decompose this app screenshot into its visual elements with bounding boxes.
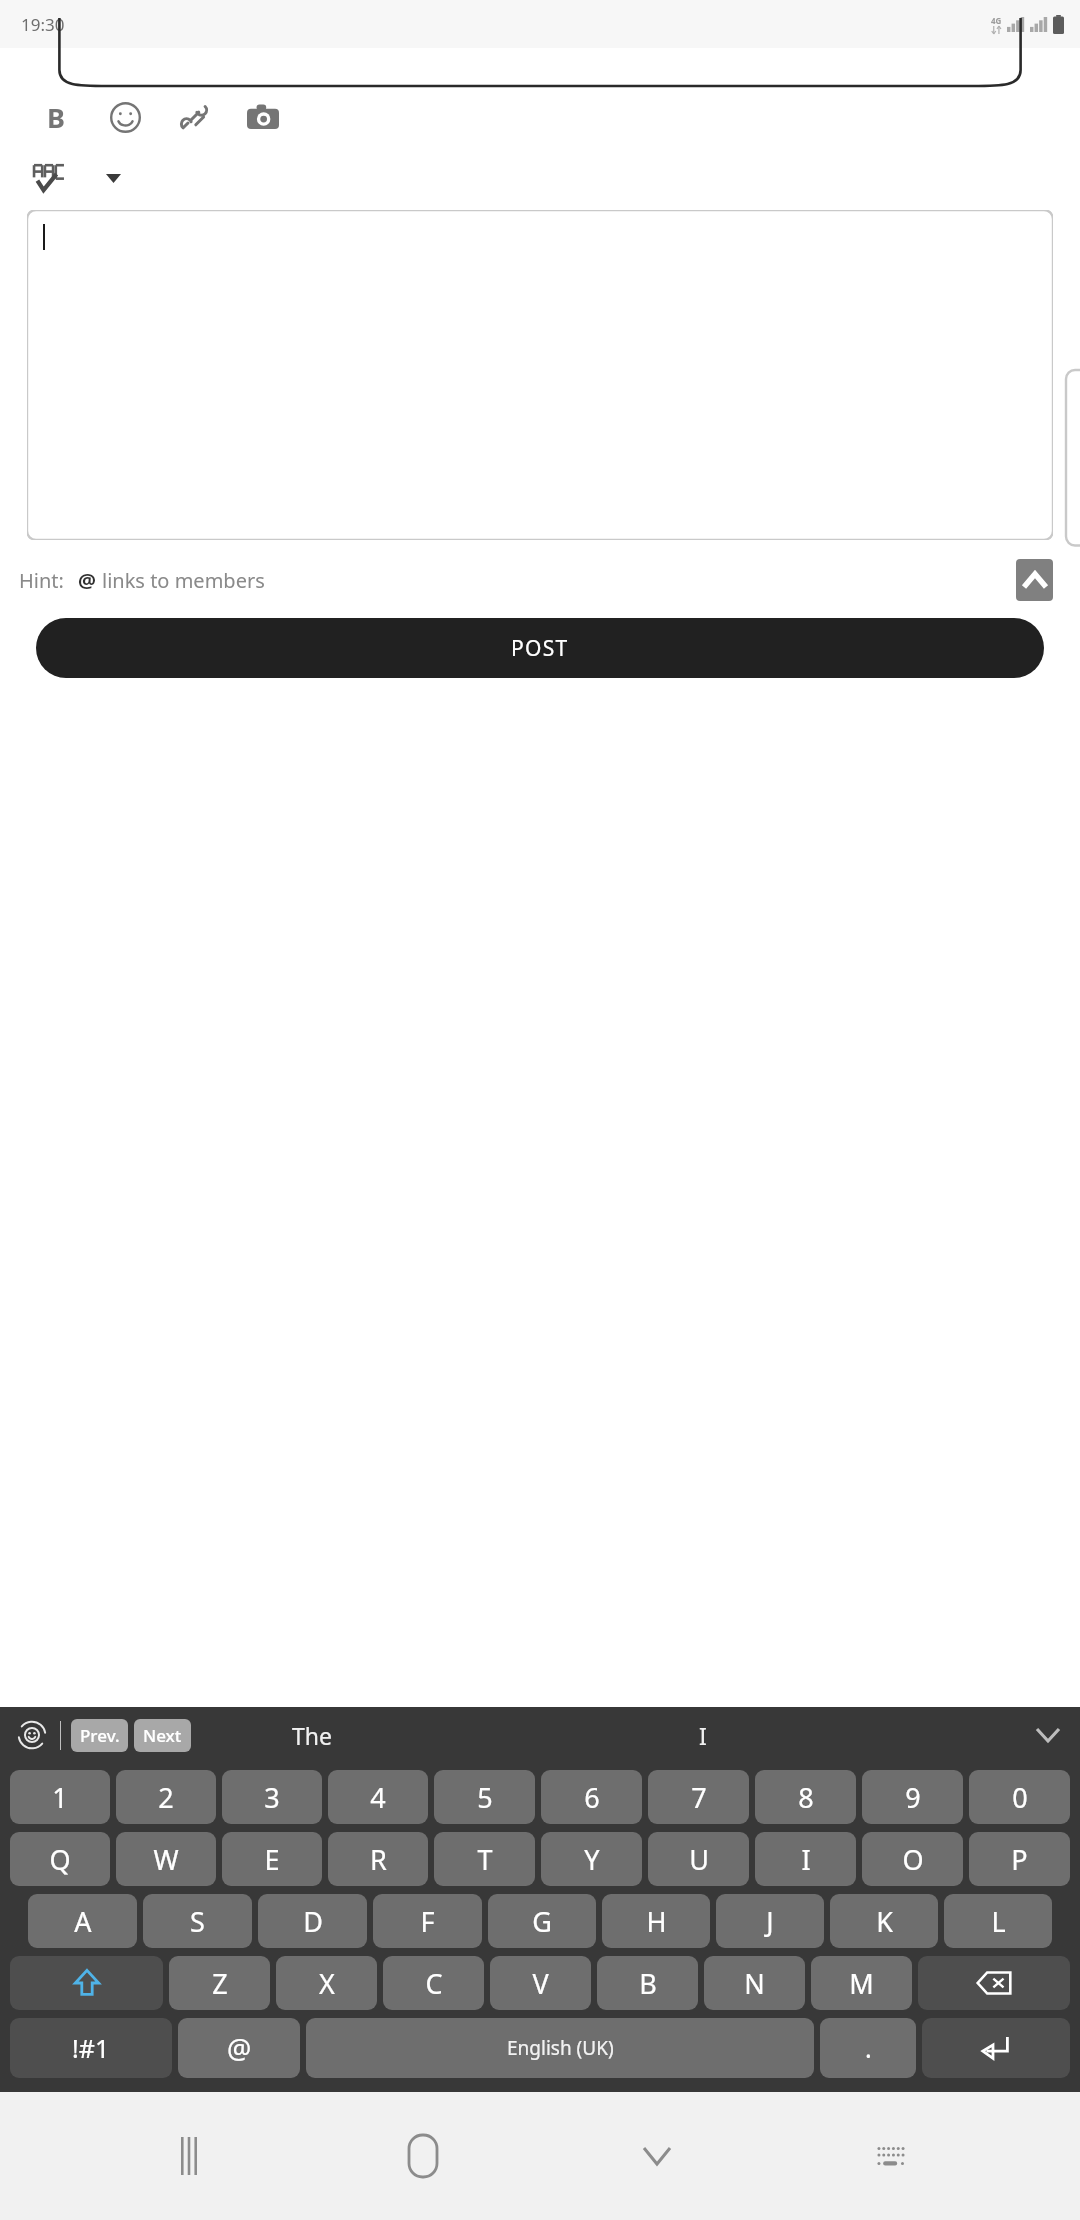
button[interactable]: Hide suggestions (1020, 1707, 1076, 1763)
staticText: 4 (370, 1779, 386, 1816)
button[interactable]: Back (612, 2111, 702, 2201)
button[interactable]: K (830, 1894, 938, 1948)
button[interactable]: Keyboard (846, 2111, 936, 2201)
staticText: U (689, 1841, 709, 1878)
button[interactable]: W (116, 1832, 216, 1886)
staticText: F (420, 1903, 435, 1940)
button[interactable]: N (704, 1956, 805, 2010)
button[interactable]: Next (134, 1719, 191, 1752)
staticText: 8 (798, 1779, 814, 1816)
staticText: R (370, 1841, 387, 1878)
button[interactable]: 0 (969, 1770, 1070, 1824)
button[interactable]: Backspace (918, 1956, 1070, 2010)
staticText: L (991, 1903, 1006, 1940)
button[interactable]: Scroll up (1016, 559, 1053, 601)
button[interactable]: B (597, 1956, 698, 2010)
button[interactable]: J (716, 1894, 824, 1948)
staticText: B (47, 99, 65, 136)
button[interactable]: Z (169, 1956, 270, 2010)
staticText: W (153, 1841, 179, 1878)
staticText: @ (227, 2030, 252, 2067)
button[interactable]: 6 (541, 1770, 642, 1824)
staticText: A (74, 1903, 92, 1940)
staticText: E (264, 1841, 280, 1878)
staticText: 6 (584, 1779, 600, 1816)
button[interactable]: 9 (862, 1770, 963, 1824)
button[interactable]: Insert emoji (99, 91, 151, 143)
button[interactable]: Home (378, 2111, 468, 2201)
button[interactable]: C (383, 1956, 484, 2010)
button[interactable]: 2 (116, 1770, 216, 1824)
button[interactable]: Y (541, 1832, 642, 1886)
staticText: O (902, 1841, 924, 1878)
button[interactable]: Spell check (30, 159, 68, 197)
staticText: I (801, 1841, 811, 1878)
staticText: @ (78, 567, 96, 594)
button[interactable]: Enter (922, 2018, 1070, 2078)
staticText: X (319, 1965, 335, 2002)
button[interactable]: Period (820, 2018, 916, 2078)
staticText: Z (212, 1965, 228, 2002)
staticText: 0 (1012, 1779, 1028, 1816)
staticText: 4G (991, 15, 1002, 26)
button[interactable]: V (490, 1956, 591, 2010)
button[interactable]: G (488, 1894, 596, 1948)
staticText: 9 (905, 1779, 921, 1816)
button[interactable]: D (258, 1894, 367, 1948)
button[interactable]: E (222, 1832, 322, 1886)
staticText: H (646, 1903, 667, 1940)
button[interactable]: 1 (10, 1770, 110, 1824)
staticText: S (190, 1903, 205, 1940)
staticText: G (532, 1903, 552, 1940)
staticText: 1 (52, 1779, 68, 1816)
staticText: links to members (102, 567, 265, 594)
button[interactable]: The (237, 1707, 387, 1763)
button[interactable]: Bold (30, 91, 82, 143)
button[interactable]: X (276, 1956, 377, 2010)
button[interactable]: T (434, 1832, 535, 1886)
button[interactable]: I (658, 1707, 748, 1763)
button[interactable]: Insert link (168, 91, 220, 143)
button[interactable]: Q (10, 1832, 110, 1886)
button[interactable] (27, 210, 1053, 540)
button[interactable]: 5 (434, 1770, 535, 1824)
staticText: P (1011, 1841, 1028, 1878)
button[interactable]: Prev. (71, 1719, 128, 1752)
staticText: English (UK) (507, 2035, 614, 2061)
button[interactable]: POST (36, 618, 1044, 678)
button[interactable]: R (328, 1832, 428, 1886)
button[interactable]: Attach photo (237, 91, 289, 143)
button[interactable]: Space (306, 2018, 814, 2078)
button[interactable]: U (648, 1832, 749, 1886)
button[interactable]: O (862, 1832, 963, 1886)
button[interactable]: I (755, 1832, 856, 1886)
button[interactable]: Emoji (10, 1713, 54, 1757)
staticText: I (699, 1720, 707, 1751)
button[interactable]: P (969, 1832, 1070, 1886)
staticText: POST (511, 634, 569, 663)
staticText: 2 (158, 1779, 174, 1816)
button[interactable]: At sign (178, 2018, 300, 2078)
staticText: Prev. (80, 1724, 120, 1747)
button[interactable]: 4 (328, 1770, 428, 1824)
button[interactable]: F (373, 1894, 482, 1948)
staticText: The (292, 1720, 332, 1751)
staticText: 7 (691, 1779, 707, 1816)
button[interactable]: H (602, 1894, 710, 1948)
staticText: 3 (264, 1779, 280, 1816)
staticText: Q (49, 1841, 71, 1878)
button[interactable]: 3 (222, 1770, 322, 1824)
button[interactable]: A (28, 1894, 137, 1948)
button[interactable]: Recents (144, 2111, 234, 2201)
staticText: Next (143, 1724, 182, 1747)
button[interactable]: M (811, 1956, 912, 2010)
staticText: D (303, 1903, 323, 1940)
button[interactable]: L (944, 1894, 1052, 1948)
button[interactable]: Symbols (10, 2018, 172, 2078)
staticText: B (639, 1965, 657, 2002)
button[interactable]: More options (94, 159, 132, 197)
button[interactable]: Shift (10, 1956, 163, 2010)
button[interactable]: 8 (755, 1770, 856, 1824)
button[interactable]: 7 (648, 1770, 749, 1824)
button[interactable]: S (143, 1894, 252, 1948)
